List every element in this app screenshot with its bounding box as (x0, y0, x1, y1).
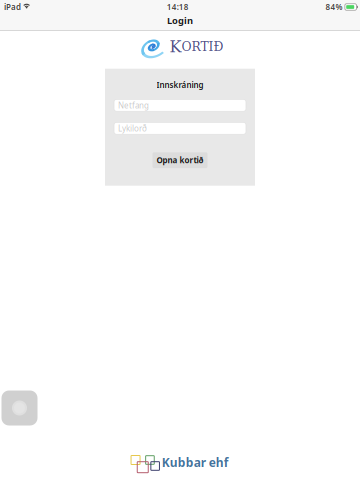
staticText: Opna kortið (156, 155, 203, 165)
staticText: ORTIÐ (181, 40, 223, 54)
staticText: Kubbar ehf (162, 454, 229, 470)
staticText: iPad (4, 2, 21, 12)
staticText: K (169, 37, 181, 56)
button[interactable]: Opna kortið (152, 152, 207, 168)
button[interactable]: AssistiveTouch (1, 390, 38, 425)
staticText: Login (167, 14, 193, 27)
staticText: 14:18 (167, 2, 189, 12)
staticText: Netfang (118, 100, 149, 111)
staticText: Innskráning (156, 80, 203, 90)
staticText: 84% (325, 2, 342, 12)
staticText: Lykilorð (118, 123, 147, 134)
